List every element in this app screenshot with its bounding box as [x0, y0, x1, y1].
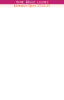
staticText: Home — [16, 0, 24, 4]
staticText: About — [26, 0, 35, 4]
staticText: Admission Open 2024-25 — [13, 4, 50, 8]
staticText: Courses — [37, 0, 48, 4]
